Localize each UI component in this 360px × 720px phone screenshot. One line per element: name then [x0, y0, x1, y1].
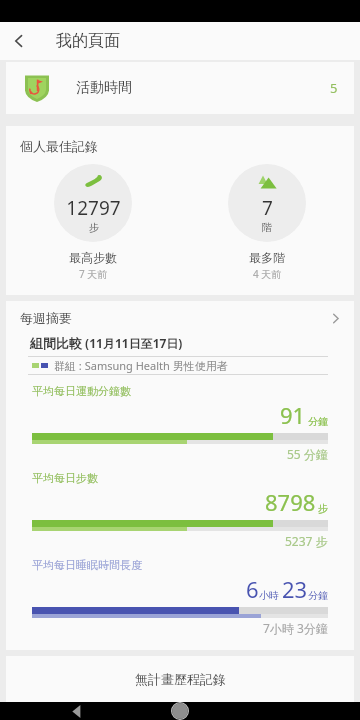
- staticText: 平均每日睡眠時間長度: [32, 558, 142, 572]
- button[interactable]: Back: [62, 702, 92, 720]
- button[interactable]: 無計畫歷程記錄: [6, 656, 354, 702]
- staticText: 階: [262, 221, 272, 234]
- staticText: (11月11日至17日): [82, 335, 183, 351]
- staticText: 5: [330, 79, 338, 97]
- staticText: 無計畫歷程記錄: [135, 671, 226, 687]
- button[interactable]: 活動時間: [6, 62, 354, 114]
- staticText: 活動時間: [76, 79, 132, 97]
- staticText: 平均每日運動分鐘數: [32, 384, 131, 398]
- button[interactable]: 12797: [6, 164, 180, 281]
- staticText: 4 天前: [253, 267, 282, 281]
- staticText: 小時: [259, 589, 279, 602]
- staticText: 7: [262, 195, 273, 221]
- staticText: 分鐘: [308, 415, 328, 428]
- staticText: 我的頁面: [56, 31, 120, 51]
- staticText: 5237 步: [285, 533, 328, 549]
- staticText: 23: [282, 574, 308, 604]
- staticText: 91: [280, 400, 306, 430]
- staticText: 步: [318, 502, 328, 515]
- staticText: 最高步數: [69, 250, 117, 265]
- staticText: 55 分鐘: [287, 446, 328, 462]
- other: More: [320, 303, 350, 333]
- button[interactable]: Home: [163, 702, 197, 720]
- staticText: 6: [246, 574, 259, 604]
- staticText: 分鐘: [308, 589, 328, 602]
- button[interactable]: 7: [180, 164, 354, 281]
- staticText: 8798: [265, 487, 316, 517]
- staticText: 7 天前: [79, 267, 108, 281]
- staticText: 每週摘要: [20, 310, 72, 326]
- button[interactable]: Back: [0, 22, 38, 60]
- staticText: 12797: [66, 195, 121, 221]
- staticText: 平均每日步數: [32, 471, 98, 485]
- staticText: 個人最佳記錄: [20, 138, 98, 154]
- staticText: 最多階: [249, 250, 285, 265]
- staticText: 步: [89, 221, 99, 234]
- button[interactable]: 每週摘要: [6, 301, 354, 335]
- staticText: 7小時 3分鐘: [263, 620, 328, 636]
- staticText: 組間比較: [30, 335, 82, 351]
- staticText: 群組 : Samsung Health 男性使用者: [54, 358, 228, 373]
